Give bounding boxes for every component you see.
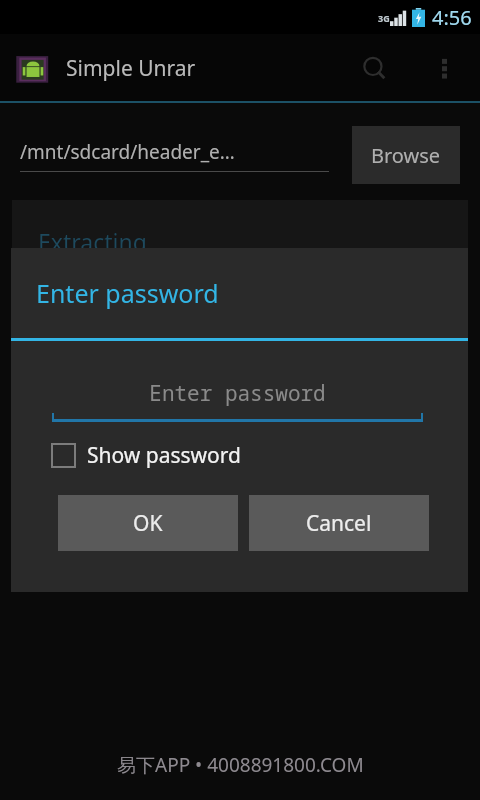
staticText: Enter password bbox=[52, 379, 423, 408]
staticText: OK bbox=[133, 509, 163, 538]
staticText: 3G bbox=[378, 12, 390, 24]
staticText: 4:56 bbox=[432, 4, 472, 31]
button[interactable]: Browse bbox=[352, 126, 460, 184]
staticText: Cancel bbox=[306, 509, 372, 538]
staticText: Enter password bbox=[36, 276, 219, 310]
staticText: Browse bbox=[371, 142, 441, 169]
staticText: Show password bbox=[87, 441, 241, 470]
staticText: Extracting bbox=[38, 226, 147, 257]
button[interactable]: Search bbox=[348, 42, 402, 96]
staticText: Simple Unrar bbox=[66, 54, 196, 83]
button[interactable]: Cancel bbox=[249, 495, 429, 551]
button[interactable]: Show password bbox=[52, 441, 241, 470]
button[interactable]: /mnt/sdcard/header_e… bbox=[20, 139, 342, 172]
staticText: 易下APP • 4008891800.COM bbox=[117, 752, 364, 778]
button[interactable]: More options bbox=[422, 47, 466, 91]
button[interactable]: OK bbox=[58, 495, 238, 551]
button[interactable]: Enter password bbox=[52, 379, 423, 422]
staticText: /mnt/sdcard/header_e… bbox=[20, 139, 235, 165]
